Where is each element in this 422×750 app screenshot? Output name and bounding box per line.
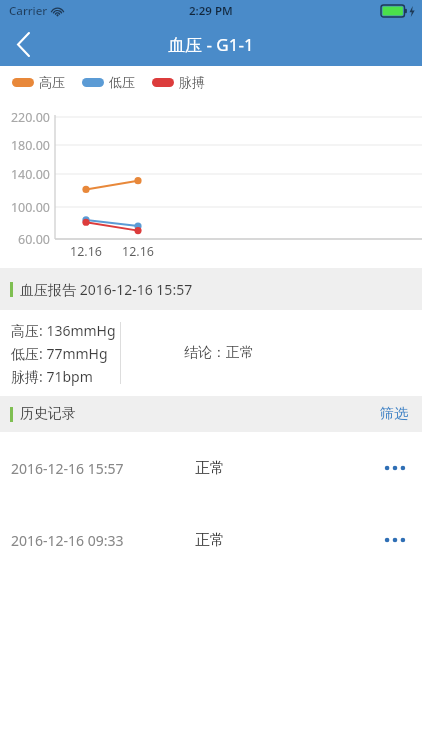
button[interactable]: 筛选 (366, 396, 422, 432)
staticText: 60.00 (0, 231, 50, 248)
staticText: 正常 (195, 531, 225, 550)
staticText: 历史记录 (20, 405, 76, 423)
button[interactable]: More options (368, 445, 422, 491)
staticText: 低压 (109, 74, 135, 90)
staticText: 高压 (39, 74, 65, 90)
staticText: 12.16 (56, 243, 116, 260)
staticText: 筛选 (380, 405, 408, 423)
staticText: 100.00 (0, 199, 50, 216)
staticText: 血压 - G1-1 (168, 33, 254, 56)
staticText: 结论：正常 (184, 344, 254, 362)
staticText: 180.00 (0, 137, 50, 154)
button[interactable]: More options (368, 517, 422, 563)
staticText: 2:29 PM (189, 3, 233, 19)
staticText: 2016-12-16 15:57 (11, 459, 124, 478)
staticText: 血压报告 2016-12-16 15:57 (20, 280, 193, 299)
staticText: 正常 (195, 459, 225, 478)
staticText: 12.16 (108, 243, 168, 260)
staticText: 140.00 (0, 166, 50, 183)
button[interactable]: 2016-12-16 09:33 (0, 504, 422, 576)
staticText: 高压: 136mmHg (11, 321, 116, 340)
button[interactable]: 2016-12-16 15:57 (0, 432, 422, 504)
staticText: Carrier (9, 3, 48, 19)
staticText: 220.00 (0, 109, 50, 126)
button[interactable]: Back (0, 22, 46, 66)
staticText: 低压: 77mmHg (11, 344, 108, 363)
staticText: 脉搏 (179, 74, 205, 90)
staticText: 脉搏: 71bpm (11, 367, 93, 386)
staticText: 2016-12-16 09:33 (11, 531, 124, 550)
